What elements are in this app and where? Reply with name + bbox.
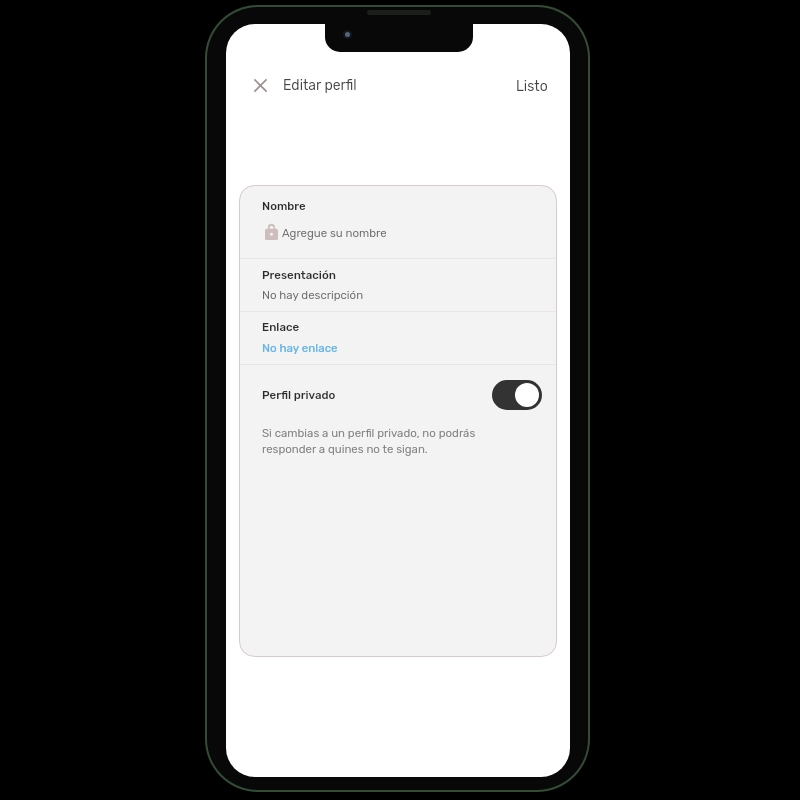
staticText: Agregue su nombre	[282, 226, 387, 240]
staticText: Si cambias a un perfil privado, no podrá…	[262, 426, 476, 455]
staticText: Listo	[516, 78, 548, 95]
staticText: Presentación	[262, 268, 336, 282]
staticText: Perfil privado	[262, 388, 336, 402]
button[interactable]: Listo	[504, 71, 560, 102]
staticText: No hay descripción	[262, 288, 364, 302]
staticText: Nombre	[262, 199, 306, 213]
button[interactable]: Nombre	[239, 185, 557, 258]
staticText: No hay enlace	[262, 341, 338, 355]
button[interactable]: Perfil privado	[239, 365, 557, 424]
staticText: Enlace	[262, 320, 300, 334]
button[interactable]: Cerrar	[243, 68, 277, 102]
button[interactable]: Enlace	[239, 312, 557, 364]
staticText: Editar perfil	[283, 77, 357, 94]
button[interactable]: Presentación	[239, 259, 557, 311]
